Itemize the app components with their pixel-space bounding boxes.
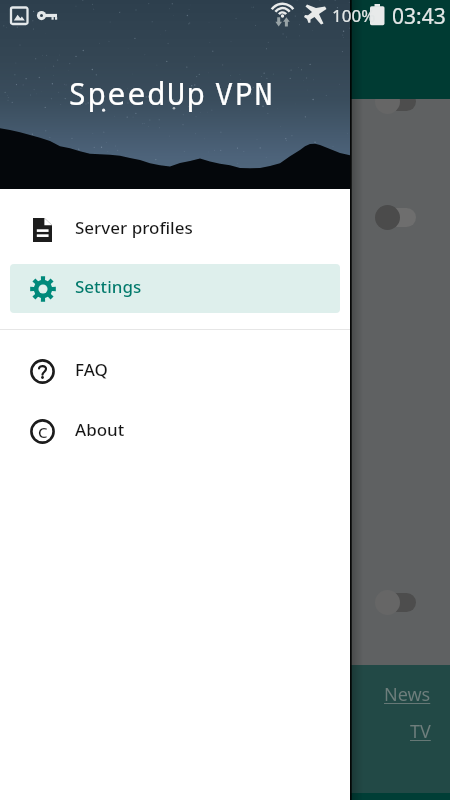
staticText: TV [410,719,431,744]
staticText: 100% [332,4,376,27]
staticText: FAQ [75,358,108,381]
button[interactable]: Settings [10,264,340,313]
button[interactable] [375,589,416,615]
button[interactable]: Server profiles [10,205,340,254]
staticText: Server profiles [75,216,193,239]
staticText: About [75,418,125,441]
staticText: Settings [75,275,142,298]
button[interactable]: C [10,407,340,456]
button[interactable]: TV [410,719,431,744]
staticText: C [38,422,48,442]
staticText: News [384,682,431,707]
button[interactable]: News [384,682,431,707]
staticText: SpeedUp [68,73,207,114]
staticText: VPN [215,73,275,114]
button[interactable] [375,204,416,230]
button[interactable]: FAQ [10,347,340,396]
staticText: 03:43 [392,2,446,31]
button[interactable] [375,88,416,114]
